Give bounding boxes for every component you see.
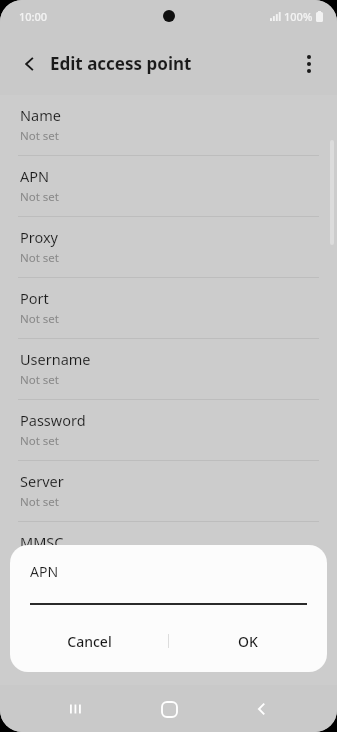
staticText: MMSC [20, 532, 64, 552]
staticText: Name [20, 105, 61, 125]
staticText: APN [20, 166, 50, 186]
button[interactable]: MMS proxy [0, 583, 337, 644]
button[interactable]: Password [0, 400, 337, 461]
staticText: 10:00 [19, 9, 48, 24]
staticText: Not set [20, 311, 59, 327]
staticText: Not set [20, 494, 59, 510]
staticText: Not set [20, 128, 59, 144]
button[interactable]: Server [0, 461, 337, 522]
staticText: Not set [20, 189, 59, 205]
staticText: Not set [20, 250, 59, 266]
button[interactable]: OK [169, 616, 327, 666]
staticText: MMS proxy [20, 593, 97, 613]
staticText: Username [20, 349, 91, 369]
staticText: Edit access point [50, 52, 192, 75]
staticText: Proxy [20, 227, 59, 247]
button[interactable]: Home [149, 689, 189, 729]
button[interactable]: MMSC [0, 522, 337, 583]
button[interactable]: Name [0, 95, 337, 156]
staticText: Port [20, 288, 49, 308]
button[interactable]: APN [0, 156, 337, 217]
staticText: OK [238, 632, 258, 651]
button[interactable]: Back [242, 689, 282, 729]
staticText: Password [20, 410, 86, 430]
staticText: Not set [20, 372, 59, 388]
button[interactable]: Back [12, 46, 48, 82]
button[interactable]: Port [0, 278, 337, 339]
button[interactable]: More options [290, 45, 328, 83]
button[interactable]: Recents [55, 689, 95, 729]
button[interactable]: Proxy [0, 217, 337, 278]
button[interactable]: Cancel [10, 616, 168, 666]
button[interactable]: Username [0, 339, 337, 400]
staticText: Cancel [67, 632, 112, 651]
staticText: 100% [284, 9, 313, 24]
staticText: Not set [20, 433, 59, 449]
staticText: Not set [20, 555, 59, 571]
staticText: Server [20, 471, 64, 491]
staticText: APN [30, 562, 59, 581]
